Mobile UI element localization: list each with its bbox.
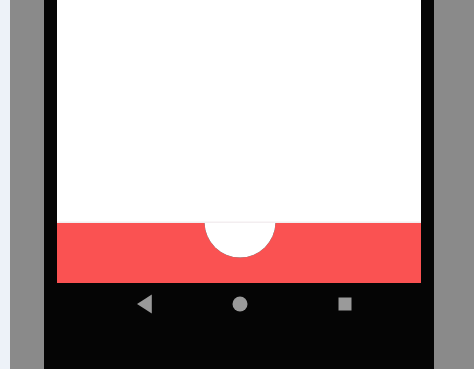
button[interactable]: Recent apps [321,280,369,328]
button[interactable]: Add [205,186,276,257]
button[interactable]: Bottom app bar [57,223,421,283]
button[interactable]: Back [121,280,169,328]
button[interactable]: Home [216,280,264,328]
